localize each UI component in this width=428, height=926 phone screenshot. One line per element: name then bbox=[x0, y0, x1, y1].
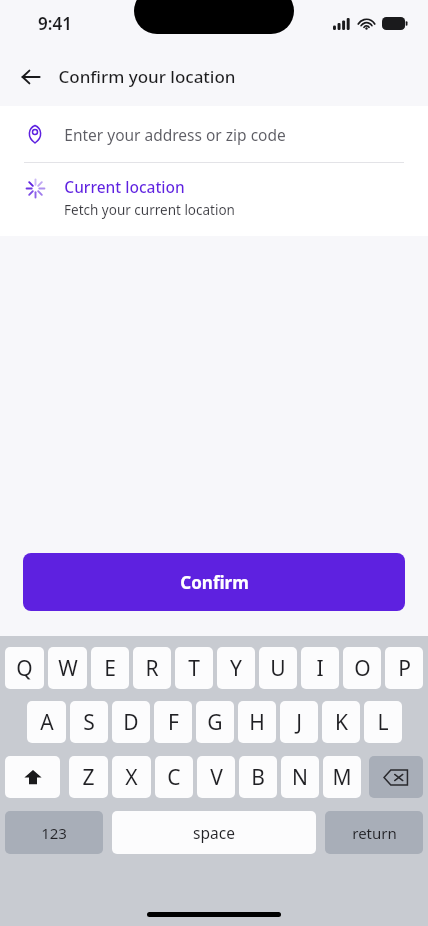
staticText: D bbox=[123, 708, 139, 737]
button[interactable]: B bbox=[239, 756, 277, 798]
staticText: N bbox=[292, 763, 308, 792]
button[interactable]: Z bbox=[69, 756, 108, 798]
button[interactable]: Q bbox=[5, 647, 44, 689]
button[interactable]: O bbox=[343, 647, 381, 689]
staticText: 123 bbox=[41, 823, 67, 843]
button[interactable]: 123 bbox=[5, 811, 103, 854]
button[interactable]: space bbox=[112, 811, 316, 854]
button[interactable]: W bbox=[48, 647, 87, 689]
button[interactable]: D bbox=[112, 701, 150, 743]
button[interactable]: Y bbox=[217, 647, 255, 689]
button[interactable]: K bbox=[322, 701, 360, 743]
button[interactable]: P bbox=[385, 647, 423, 689]
staticText: W bbox=[58, 654, 78, 683]
button[interactable]: N bbox=[281, 756, 319, 798]
staticText: Fetch your current location bbox=[64, 201, 235, 219]
staticText: T bbox=[188, 654, 200, 683]
staticText: G bbox=[207, 708, 223, 737]
button[interactable]: Current location bbox=[0, 163, 428, 236]
staticText: Current location bbox=[64, 176, 185, 197]
button[interactable]: U bbox=[259, 647, 297, 689]
staticText: O bbox=[354, 654, 371, 683]
staticText: V bbox=[210, 763, 223, 792]
staticText: J bbox=[296, 708, 302, 737]
other: Back bbox=[20, 66, 42, 88]
button[interactable]: G bbox=[196, 701, 234, 743]
button[interactable]: R bbox=[133, 647, 171, 689]
staticText: U bbox=[270, 654, 286, 683]
button[interactable]: Enter your address or zip code bbox=[0, 106, 428, 162]
staticText: H bbox=[249, 708, 265, 737]
button[interactable]: A bbox=[27, 701, 66, 743]
staticText: Q bbox=[16, 654, 33, 683]
staticText: C bbox=[167, 763, 181, 792]
button[interactable]: J bbox=[280, 701, 318, 743]
button[interactable]: I bbox=[301, 647, 339, 689]
staticText: K bbox=[335, 708, 348, 737]
staticText: M bbox=[332, 763, 352, 792]
button[interactable]: Backspace bbox=[369, 756, 423, 798]
button[interactable]: C bbox=[155, 756, 193, 798]
staticText: Confirm your location bbox=[58, 65, 236, 88]
button[interactable]: Back bbox=[0, 55, 260, 98]
button[interactable]: M bbox=[323, 756, 361, 798]
button[interactable]: Confirm bbox=[23, 553, 405, 611]
button[interactable]: V bbox=[197, 756, 235, 798]
button[interactable]: T bbox=[175, 647, 213, 689]
staticText: R bbox=[145, 654, 159, 683]
button[interactable]: Shift bbox=[5, 756, 60, 798]
staticText: L bbox=[377, 708, 389, 737]
button[interactable]: X bbox=[112, 756, 151, 798]
button[interactable]: E bbox=[91, 647, 129, 689]
button[interactable]: L bbox=[364, 701, 402, 743]
staticText: P bbox=[398, 654, 411, 683]
button[interactable]: F bbox=[154, 701, 192, 743]
staticText: B bbox=[251, 763, 265, 792]
staticText: X bbox=[125, 763, 138, 792]
staticText: return bbox=[352, 823, 397, 843]
staticText: Enter your address or zip code bbox=[64, 124, 286, 145]
staticText: 9:41 bbox=[38, 12, 72, 35]
staticText: A bbox=[40, 708, 54, 737]
staticText: Confirm bbox=[180, 571, 249, 594]
staticText: E bbox=[104, 654, 116, 683]
button[interactable]: S bbox=[70, 701, 108, 743]
staticText: I bbox=[316, 654, 324, 683]
staticText: S bbox=[83, 708, 95, 737]
button[interactable]: H bbox=[238, 701, 276, 743]
staticText: Z bbox=[82, 763, 95, 792]
staticText: space bbox=[193, 822, 235, 843]
button[interactable]: return bbox=[325, 811, 423, 854]
staticText: Y bbox=[230, 654, 242, 683]
staticText: F bbox=[168, 708, 179, 737]
